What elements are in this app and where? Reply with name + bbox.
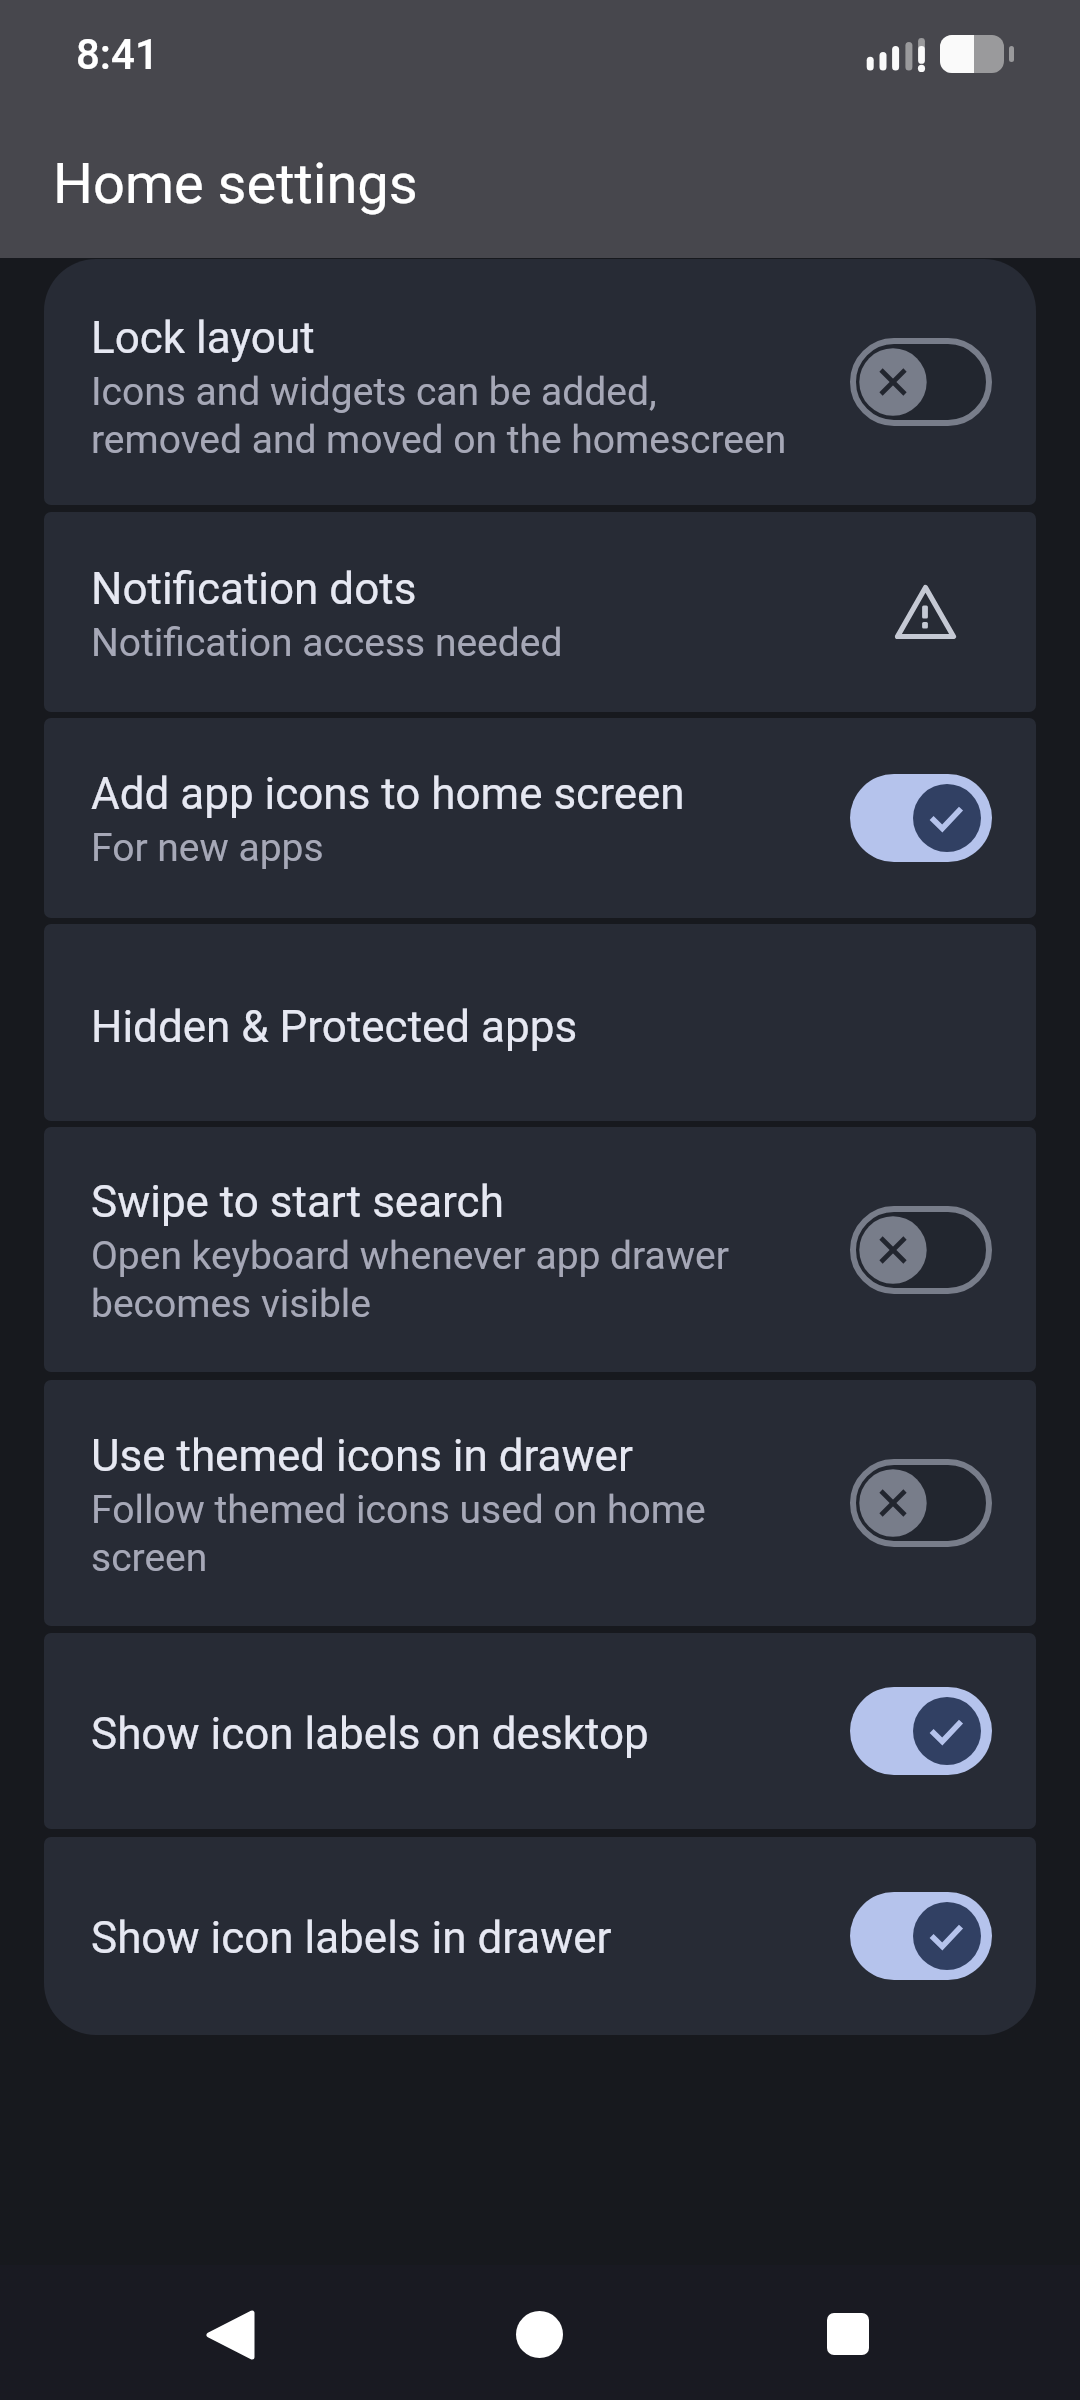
button[interactable]: Toggle on bbox=[850, 1687, 992, 1775]
staticText: 8:41 bbox=[76, 30, 159, 79]
staticText: Show icon labels on desktop bbox=[91, 1708, 649, 1760]
staticText: Notification access needed bbox=[91, 620, 563, 666]
button[interactable]: Notification dots bbox=[44, 512, 1036, 712]
button[interactable]: Warning bbox=[850, 568, 992, 656]
button[interactable]: Hidden & Protected apps bbox=[44, 924, 1036, 1121]
button[interactable]: Use themed icons in drawer bbox=[44, 1380, 1036, 1626]
button[interactable]: Back bbox=[180, 2291, 280, 2379]
button[interactable]: Toggle on bbox=[850, 1892, 992, 1980]
button[interactable]: Toggle off bbox=[850, 1459, 992, 1547]
button[interactable]: Toggle on bbox=[850, 774, 992, 862]
staticText: Lock layout bbox=[91, 312, 315, 364]
button[interactable]: Show icon labels on desktop bbox=[44, 1633, 1036, 1829]
button[interactable]: Lock layout bbox=[44, 259, 1036, 505]
staticText: Follow themed icons used on home screen bbox=[91, 1487, 706, 1581]
staticText: Hidden & Protected apps bbox=[91, 1001, 578, 1053]
button[interactable]: Toggle off bbox=[850, 1206, 992, 1294]
staticText: Open keyboard whenever app drawer become… bbox=[91, 1233, 729, 1327]
staticText: Home settings bbox=[53, 151, 418, 217]
button[interactable]: Recent apps bbox=[798, 2290, 898, 2378]
button[interactable]: Swipe to start search bbox=[44, 1127, 1036, 1372]
staticText: Use themed icons in drawer bbox=[91, 1430, 633, 1482]
staticText: Notification dots bbox=[91, 563, 417, 615]
button[interactable]: Show icon labels in drawer bbox=[44, 1837, 1036, 2035]
staticText: Add app icons to home screen bbox=[91, 768, 685, 820]
button[interactable]: Toggle off bbox=[850, 338, 992, 426]
staticText: Swipe to start search bbox=[91, 1176, 504, 1228]
button[interactable]: Add app icons to home screen bbox=[44, 718, 1036, 918]
staticText: Show icon labels in drawer bbox=[91, 1912, 612, 1964]
button[interactable]: Home bbox=[489, 2290, 589, 2378]
staticText: Icons and widgets can be added, removed … bbox=[91, 369, 787, 463]
staticText: For new apps bbox=[91, 825, 324, 871]
